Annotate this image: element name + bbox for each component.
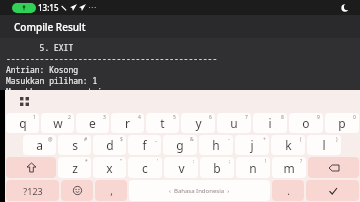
staticText: , xyxy=(110,184,113,198)
other: Do not disturb xyxy=(340,3,350,13)
staticText: @ xyxy=(48,136,53,143)
button[interactable]: t xyxy=(146,113,179,133)
button[interactable]: g xyxy=(163,135,197,155)
staticText: k xyxy=(285,137,292,153)
staticText: l xyxy=(322,137,326,153)
button[interactable] xyxy=(6,157,56,178)
staticText: h xyxy=(212,137,220,153)
staticText: 2 xyxy=(68,114,71,121)
button[interactable]: o xyxy=(289,113,323,133)
staticText: . xyxy=(287,184,290,198)
staticText: z xyxy=(72,160,78,176)
button[interactable]: h xyxy=(199,135,233,155)
staticText: ; xyxy=(229,158,231,165)
staticText: 5. EXIT xyxy=(6,42,74,53)
button[interactable]: c xyxy=(128,157,162,178)
staticText: x xyxy=(106,160,113,176)
staticText: ⋯ xyxy=(88,3,96,12)
button[interactable]: j xyxy=(235,135,269,155)
staticText: n xyxy=(249,160,257,176)
button[interactable]: i xyxy=(253,113,287,133)
staticText: 0 xyxy=(353,114,356,121)
button[interactable] xyxy=(306,180,359,201)
button[interactable]: z xyxy=(58,157,91,178)
staticText: " xyxy=(120,158,123,165)
button[interactable]: d xyxy=(93,135,126,155)
staticText: 4 xyxy=(138,114,141,121)
staticText: _ xyxy=(155,136,158,143)
button[interactable]: v xyxy=(164,157,198,178)
button[interactable]: , xyxy=(95,180,127,201)
staticText: g xyxy=(176,137,184,153)
button[interactable]: x xyxy=(93,157,126,178)
staticText: ‹ Bahasa Indonesia › xyxy=(169,187,230,195)
staticText: ) xyxy=(336,136,338,143)
button[interactable]: f xyxy=(128,135,161,155)
staticText: + xyxy=(263,136,266,143)
button[interactable]: m xyxy=(272,157,306,178)
staticText: 8 xyxy=(281,114,284,121)
staticText: Antrian: Kosong xyxy=(6,64,78,75)
staticText: u xyxy=(230,115,238,131)
staticText: 3 xyxy=(103,114,106,121)
staticText: 5 xyxy=(173,114,176,121)
button[interactable]: ?123 xyxy=(6,180,59,201)
button[interactable]: n xyxy=(236,157,270,178)
staticText: ' xyxy=(157,158,159,165)
staticText: i xyxy=(268,115,272,131)
button[interactable] xyxy=(308,157,359,178)
staticText: Compile Result xyxy=(14,20,86,34)
button[interactable]: u xyxy=(217,113,251,133)
staticText: v xyxy=(178,160,185,176)
staticText: Masukkan pilihan: 1 xyxy=(6,75,98,86)
staticText: * xyxy=(85,158,88,165)
staticText: 7 xyxy=(245,114,248,121)
staticText: : xyxy=(193,158,195,165)
staticText: w xyxy=(53,115,63,131)
staticText: s xyxy=(72,137,78,153)
staticText: $ xyxy=(120,136,123,143)
staticText: ? xyxy=(300,158,303,165)
staticText: t xyxy=(160,115,165,131)
staticText: c xyxy=(142,160,148,176)
staticText: f xyxy=(142,137,147,153)
button[interactable]: w xyxy=(41,113,74,133)
staticText: j xyxy=(250,137,254,153)
button[interactable]: l xyxy=(307,135,341,155)
staticText: 13:15 xyxy=(38,2,59,13)
staticText: a xyxy=(36,137,43,153)
staticText: ( xyxy=(300,136,302,143)
staticText: Masukkan nomor antrian: xyxy=(6,86,117,90)
button[interactable]: a xyxy=(23,135,56,155)
staticText: d xyxy=(106,137,114,153)
button[interactable]: e xyxy=(76,113,109,133)
staticText: 1 xyxy=(33,114,36,121)
staticText: ----------------------------------------… xyxy=(6,53,218,64)
button[interactable]: k xyxy=(271,135,305,155)
staticText: y xyxy=(195,115,202,131)
button[interactable]: . xyxy=(272,180,304,201)
staticText: & xyxy=(190,136,194,143)
staticText: m xyxy=(283,160,295,176)
button[interactable]: r xyxy=(111,113,144,133)
staticText: 9 xyxy=(317,114,320,121)
staticText: # xyxy=(84,136,88,143)
staticText: b xyxy=(213,160,221,176)
staticText: e xyxy=(89,115,96,131)
staticText: 6 xyxy=(209,114,212,121)
staticText: q xyxy=(19,115,27,131)
button[interactable]: Keyboard options xyxy=(17,94,31,108)
staticText: o xyxy=(302,115,310,131)
button[interactable]: p xyxy=(325,113,359,133)
staticText: r xyxy=(125,115,130,131)
button[interactable]: q xyxy=(6,113,39,133)
button[interactable]: b xyxy=(200,157,234,178)
staticText: p xyxy=(338,115,346,131)
button[interactable]: y xyxy=(181,113,215,133)
staticText: ! xyxy=(265,158,267,165)
button[interactable]: s xyxy=(58,135,91,155)
staticText: ?123 xyxy=(23,185,43,197)
staticText: - xyxy=(228,136,230,143)
button[interactable] xyxy=(61,180,93,201)
button[interactable]: ‹ Bahasa Indonesia › xyxy=(129,180,270,201)
